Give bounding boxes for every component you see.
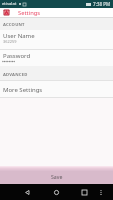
staticText: More Settings [3, 86, 43, 94]
button[interactable]: Save [0, 166, 113, 184]
button[interactable] [0, 50, 113, 66]
staticText: User Name [3, 32, 35, 40]
staticText: Settings [18, 9, 41, 17]
staticText: etisalat [2, 1, 17, 7]
button[interactable]: Back [21, 186, 33, 198]
button[interactable] [0, 30, 113, 49]
staticText: Save [51, 173, 63, 180]
button[interactable]: More options [96, 187, 106, 197]
staticText: ADVANCED [3, 72, 28, 78]
staticText: 362259 [3, 39, 17, 44]
staticText: Password [3, 52, 31, 60]
button[interactable]: Home [50, 186, 62, 198]
staticText: ACCOUNT [3, 22, 25, 28]
button[interactable]: App icon [3, 9, 10, 16]
button[interactable] [0, 81, 113, 97]
staticText: 7:38 PM [93, 1, 111, 7]
button[interactable]: Recent apps [78, 186, 90, 198]
